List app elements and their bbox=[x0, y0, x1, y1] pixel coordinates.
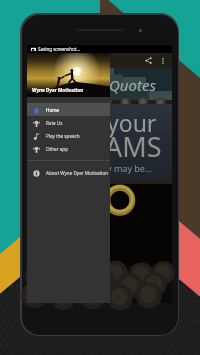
button[interactable]: your bbox=[27, 104, 172, 180]
staticText: Quotes bbox=[109, 75, 156, 95]
staticText: Other app bbox=[46, 146, 68, 152]
staticText: Wyne Dyer Motivation bbox=[32, 87, 84, 93]
staticText: y may be… bbox=[107, 162, 153, 174]
button[interactable] bbox=[27, 180, 172, 184]
button[interactable]: More options bbox=[157, 55, 168, 66]
staticText: About Wyne Dyer Motivation bbox=[46, 170, 109, 176]
button[interactable]: Quotes bbox=[27, 68, 172, 100]
button[interactable]: Home bbox=[27, 103, 110, 116]
button[interactable]: Play the speech bbox=[27, 129, 110, 142]
staticText: Saving screenshot… bbox=[38, 46, 80, 52]
button[interactable]: Share bbox=[143, 55, 154, 66]
button[interactable]: Rate Us bbox=[27, 116, 110, 129]
button[interactable]: Wyne Dyer Motivation bbox=[27, 53, 110, 97]
button[interactable] bbox=[27, 184, 172, 265]
staticText: Play the speech bbox=[46, 133, 80, 139]
staticText: your bbox=[107, 107, 157, 138]
staticText: AMS bbox=[105, 128, 162, 165]
button[interactable]: Other app bbox=[27, 142, 110, 155]
staticText: Home bbox=[46, 107, 60, 113]
button[interactable]: About Wyne Dyer Motivation bbox=[27, 166, 110, 179]
button[interactable] bbox=[27, 100, 172, 104]
staticText: Rate Us bbox=[46, 120, 63, 126]
button[interactable] bbox=[27, 265, 172, 303]
